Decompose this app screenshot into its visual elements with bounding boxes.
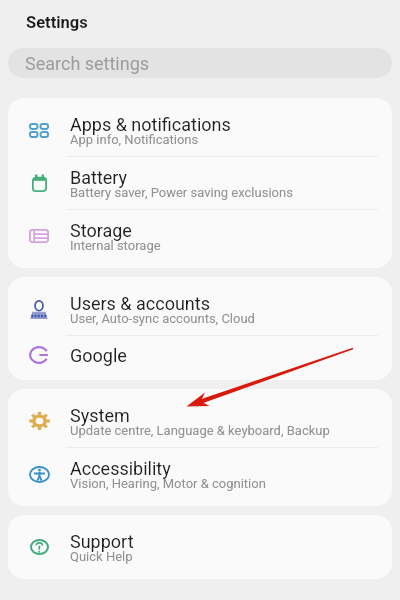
staticText: Battery — [70, 167, 128, 188]
button[interactable]: Google — [8, 336, 392, 374]
button[interactable]: Users & accounts — [8, 283, 392, 335]
staticText: Vision, Hearing, Motor & cognition — [70, 476, 266, 491]
staticText: Users & accounts — [70, 293, 210, 314]
staticText: App info, Notifications — [70, 132, 199, 147]
staticText: Battery saver, Power saving exclusions — [70, 185, 293, 200]
button[interactable]: Search settings — [8, 48, 392, 78]
staticText: Apps & notifications — [70, 114, 231, 135]
staticText: System — [70, 405, 130, 426]
staticText: Storage — [70, 220, 132, 241]
staticText: Quick Help — [70, 549, 133, 564]
staticText: User, Auto-sync accounts, Cloud — [70, 311, 255, 326]
button[interactable]: Storage — [8, 210, 392, 262]
button[interactable]: System — [8, 395, 392, 447]
staticText: Settings — [26, 13, 88, 32]
staticText: Internal storage — [70, 238, 161, 253]
button[interactable]: Support — [8, 521, 392, 573]
button[interactable]: Battery — [8, 157, 392, 209]
button[interactable]: Apps & notifications — [8, 104, 392, 156]
staticText: Search settings — [25, 53, 150, 74]
staticText: Update centre, Language & keyboard, Back… — [70, 423, 330, 438]
staticText: Support — [70, 531, 134, 552]
staticText: Accessibility — [70, 458, 171, 479]
staticText: Google — [70, 345, 127, 366]
button[interactable]: Accessibility — [8, 448, 392, 500]
